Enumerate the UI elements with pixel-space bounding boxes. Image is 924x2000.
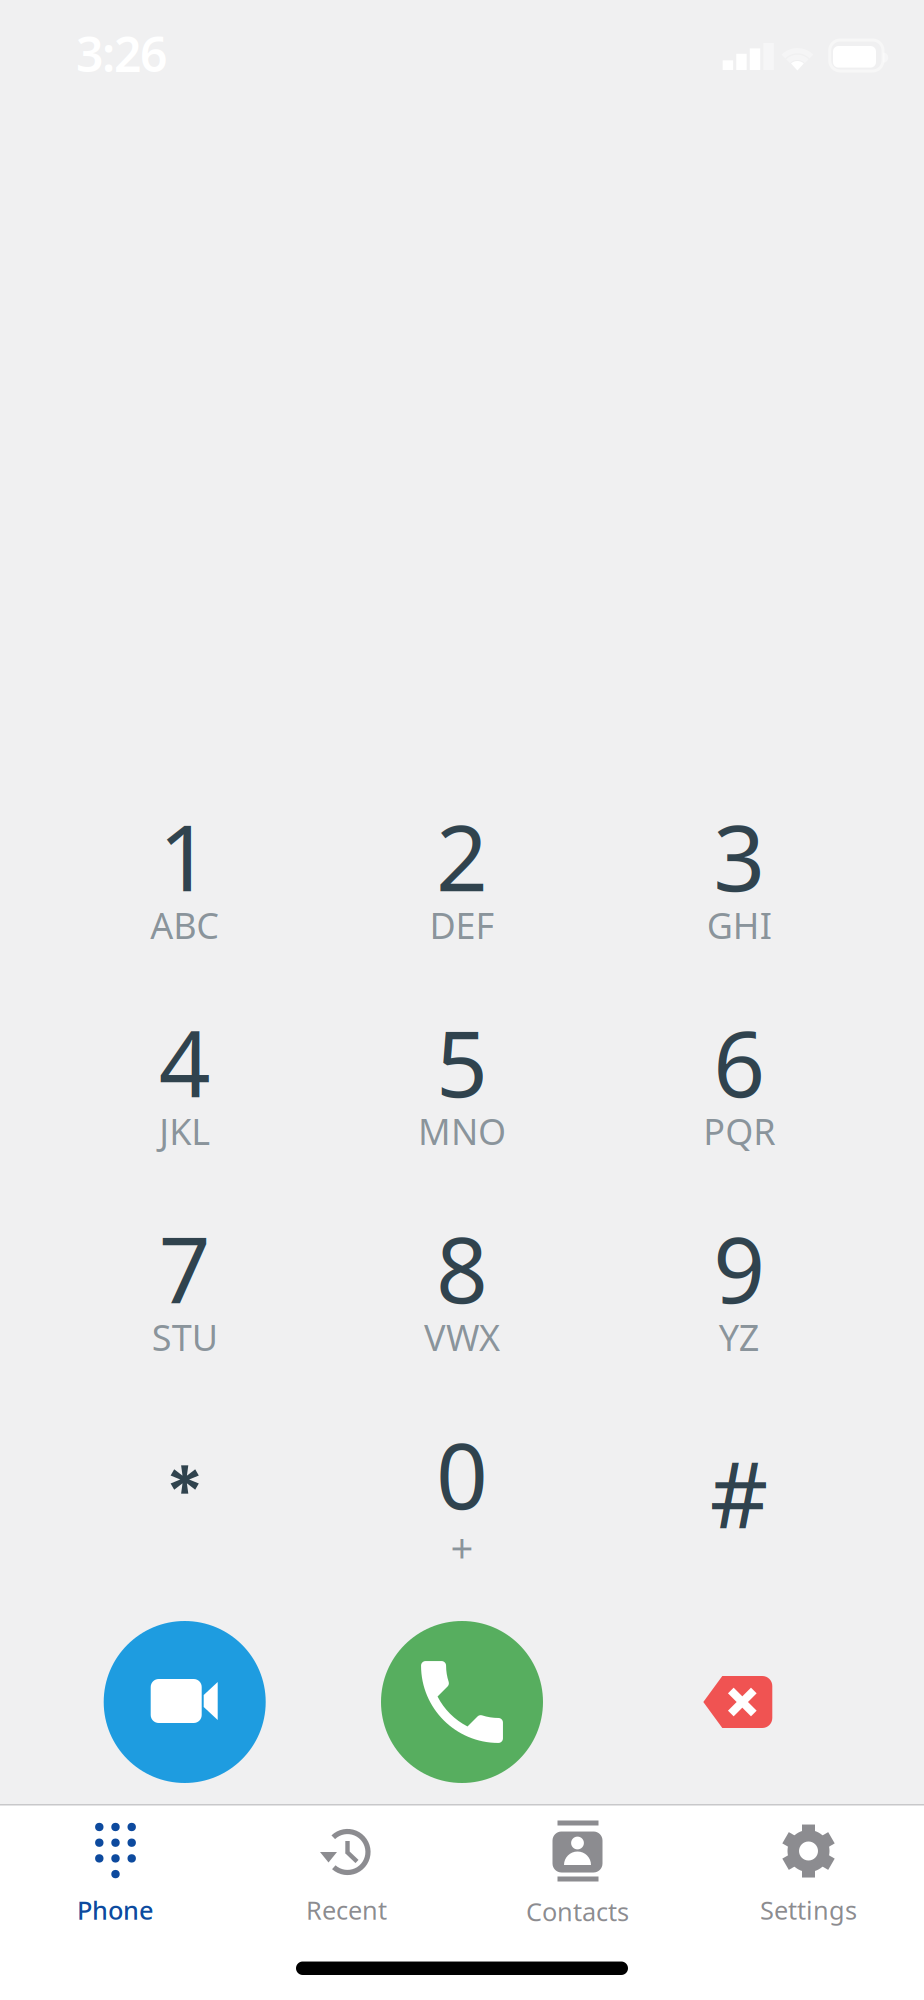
button[interactable]: 7 — [46, 1167, 323, 1373]
staticText: ABC — [150, 901, 219, 949]
staticText: GHI — [707, 901, 772, 949]
button[interactable]: Phone — [0, 1822, 231, 1927]
staticText: VWX — [424, 1313, 500, 1361]
staticText: MNO — [418, 1107, 506, 1155]
button[interactable]: Contacts — [462, 1820, 693, 1928]
staticText: Phone — [77, 1893, 154, 1927]
staticText: 4 — [159, 1002, 211, 1122]
button[interactable]: 9 — [601, 1167, 878, 1373]
button[interactable]: Star — [46, 1373, 323, 1579]
staticText: STU — [152, 1313, 218, 1361]
button[interactable]: Video call — [104, 1621, 266, 1783]
staticText: DEF — [429, 901, 494, 949]
staticText: YZ — [719, 1313, 760, 1361]
staticText: 2 — [436, 796, 488, 916]
staticText: 5 — [436, 1002, 488, 1122]
button[interactable]: 5 — [323, 961, 601, 1167]
staticText: PQR — [703, 1107, 775, 1155]
staticText: + — [450, 1520, 473, 1573]
staticText: 8 — [436, 1208, 488, 1328]
button[interactable]: Call — [381, 1621, 543, 1783]
button[interactable]: Settings — [693, 1822, 924, 1927]
button[interactable]: 1 — [46, 755, 323, 961]
staticText: 3:26 — [76, 22, 167, 85]
staticText: Recent — [306, 1893, 387, 1927]
staticText: 9 — [713, 1208, 765, 1328]
button[interactable]: 3 — [601, 755, 878, 961]
staticText: JKL — [159, 1107, 210, 1155]
button[interactable]: Recent — [231, 1822, 462, 1927]
staticText: 1 — [159, 796, 211, 916]
staticText: 3 — [713, 796, 765, 916]
staticText: Settings — [760, 1893, 857, 1927]
button[interactable]: 8 — [323, 1167, 601, 1373]
button[interactable]: 2 — [323, 755, 601, 961]
button[interactable]: Delete — [694, 1667, 784, 1737]
button[interactable]: 6 — [601, 961, 878, 1167]
staticText: 6 — [713, 1002, 765, 1122]
button[interactable]: 0 — [323, 1373, 601, 1579]
button[interactable]: Pound — [601, 1373, 878, 1579]
staticText: # — [710, 1433, 769, 1553]
staticText: 0 — [436, 1414, 488, 1534]
staticText: Contacts — [526, 1894, 629, 1928]
button[interactable]: 4 — [46, 961, 323, 1167]
staticText: 7 — [159, 1208, 211, 1328]
